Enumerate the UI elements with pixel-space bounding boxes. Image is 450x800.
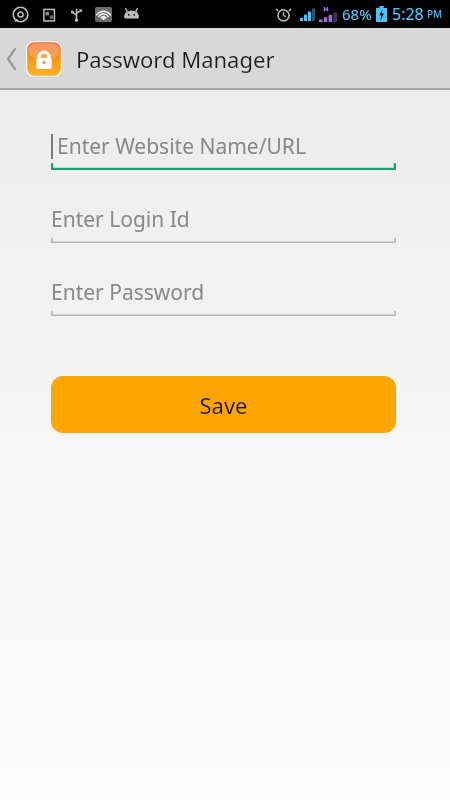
button[interactable]: Enter Website Name/URL	[51, 126, 396, 170]
button[interactable]: Navigate up	[0, 28, 24, 90]
staticText: Enter Login Id	[51, 205, 190, 234]
staticText: Save	[199, 390, 248, 420]
staticText: Password Manager	[76, 44, 275, 74]
staticText: PM	[427, 7, 443, 21]
button[interactable]: Save	[51, 376, 396, 433]
button[interactable]: Enter Password	[51, 272, 396, 316]
staticText: Enter Password	[51, 278, 205, 307]
staticText: 68%	[342, 4, 372, 24]
staticText: 5:28	[392, 3, 424, 25]
staticText: Enter Website Name/URL	[57, 132, 306, 161]
button[interactable]: Enter Login Id	[51, 199, 396, 243]
